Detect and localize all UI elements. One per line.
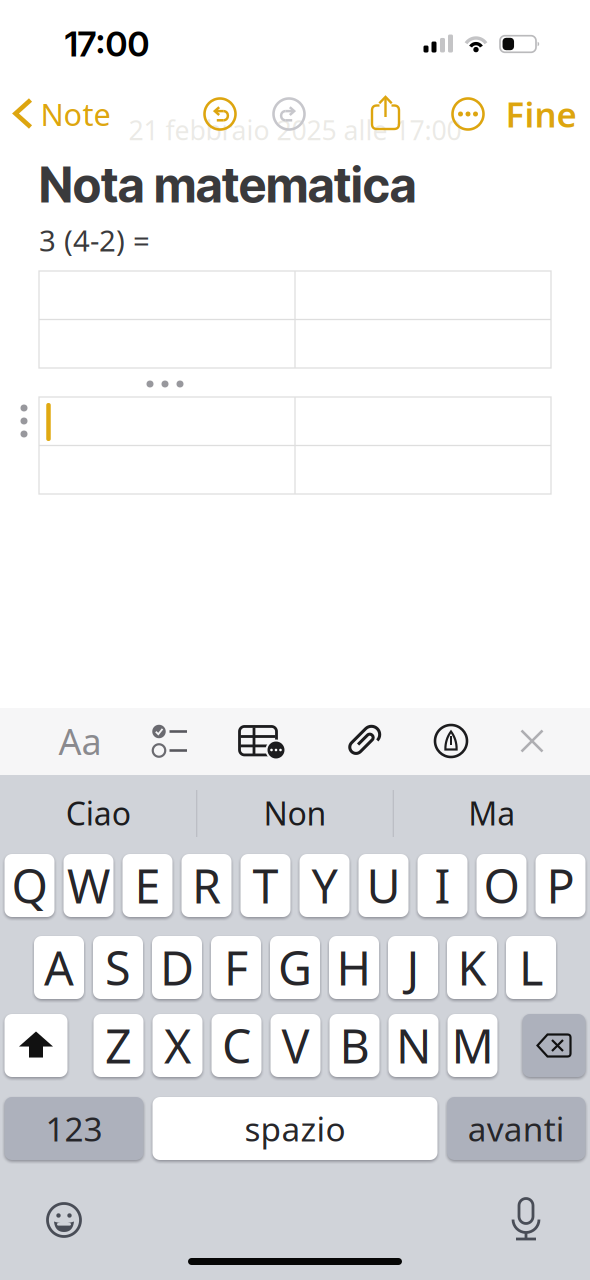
button[interactable]: F [211,936,261,999]
staticText: H [336,936,371,998]
staticText: 3 (4-2) = [39,220,150,259]
button[interactable]: Table [239,726,286,756]
staticText: J [406,936,419,998]
button[interactable]: Attach [346,720,386,760]
button[interactable]: X [152,1014,202,1077]
button[interactable]: Undo [204,98,236,130]
staticText: avanti [468,1106,565,1151]
button[interactable]: Close [521,730,542,751]
staticText: Non [263,792,326,834]
staticText: U [366,854,400,916]
button[interactable]: Emoji [47,1203,81,1237]
button[interactable]: K [447,936,497,999]
button[interactable]: Shift [4,1014,67,1077]
staticText: T [252,854,278,916]
button[interactable]: Dictate [511,1197,541,1240]
button[interactable]: T [240,854,290,917]
button[interactable]: Non [205,785,385,841]
button[interactable]: O [476,854,526,917]
staticText: R [192,854,221,916]
staticText: D [160,936,194,998]
button[interactable]: P [535,854,585,917]
staticText: L [519,936,543,998]
button[interactable]: Q [4,854,54,917]
staticText: X [164,1014,191,1076]
button[interactable]: M [447,1014,497,1077]
button[interactable]: G [270,936,320,999]
staticText: Fine [505,91,576,137]
button[interactable]: U [358,854,408,917]
staticText: Y [311,854,337,916]
staticText: E [134,854,160,916]
staticText: Nota matematica [39,150,416,220]
button[interactable]: Ma [402,785,582,841]
button[interactable]: spazio [152,1097,437,1160]
button[interactable]: W [63,854,113,917]
staticText: C [222,1014,251,1076]
button[interactable]: avanti [447,1097,585,1160]
staticText: I [434,854,450,916]
staticText: G [278,936,312,998]
staticText: spazio [244,1106,345,1151]
button[interactable]: Format [58,717,101,765]
button[interactable]: Share [372,95,399,129]
button[interactable]: R [181,854,231,917]
button[interactable]: Fine [505,91,576,137]
button[interactable]: Note [15,94,110,134]
staticText: S [105,936,131,998]
button[interactable]: Redo [273,98,305,130]
button[interactable]: V [270,1014,320,1077]
button[interactable]: H [329,936,379,999]
button[interactable]: S [93,936,143,999]
button[interactable]: I [417,854,467,917]
button[interactable]: 123 [4,1097,143,1160]
staticText: Q [11,854,47,916]
button[interactable]: Z [93,1014,143,1077]
button[interactable]: D [152,936,202,999]
staticText: 123 [45,1106,102,1151]
staticText: Z [105,1014,132,1076]
staticText: P [546,854,574,916]
button[interactable]: Checklist [152,726,188,756]
staticText: O [483,854,519,916]
staticText: M [451,1014,493,1076]
button[interactable]: A [34,936,84,999]
button[interactable]: L [506,936,556,999]
button[interactable]: E [122,854,172,917]
staticText: Ciao [66,792,131,834]
staticText: A [44,936,74,998]
staticText: 17:00 [64,19,149,69]
staticText: Aa [58,717,101,765]
button[interactable]: J [388,936,438,999]
button[interactable]: Markup [435,725,467,757]
staticText: Ma [468,792,515,834]
button[interactable]: Delete [522,1014,585,1077]
button[interactable]: More [452,98,484,130]
staticText: N [396,1014,431,1076]
button[interactable]: B [329,1014,379,1077]
staticText: B [339,1014,369,1076]
staticText: 21 febbraio 2025 alle 17:00 [128,112,461,148]
staticText: Note [40,94,110,134]
staticText: K [457,936,486,998]
staticText: W [67,854,110,916]
staticText: F [224,936,248,998]
button[interactable]: N [388,1014,438,1077]
staticText: V [281,1014,309,1076]
button[interactable]: C [211,1014,261,1077]
button[interactable]: Y [299,854,349,917]
button[interactable]: Ciao [8,785,188,841]
